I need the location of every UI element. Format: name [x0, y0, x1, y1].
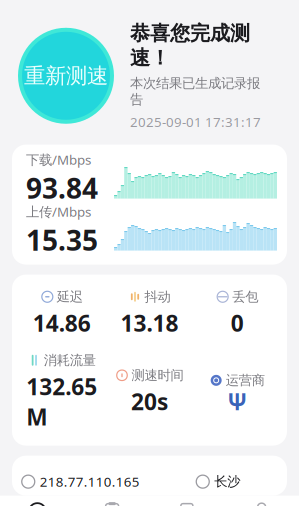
staticText: 测速时间 [131, 367, 183, 383]
staticText: 20s [131, 386, 168, 417]
staticText: 13.18 [120, 308, 178, 338]
staticText: 运营商 [226, 372, 265, 389]
staticText: 132.65M [26, 371, 97, 432]
staticText: 丢包 [232, 289, 258, 305]
staticText: 15.35 [26, 221, 98, 258]
staticText: 93.84 [26, 169, 98, 206]
button[interactable]: 首页 [0, 496, 75, 506]
staticText: Ψ [227, 386, 247, 417]
staticText: 2025-09-01 17:31:17 [130, 113, 261, 131]
staticText: 重新测速 [24, 63, 108, 89]
staticText: 本次结果已生成记录报告 [130, 75, 260, 108]
button[interactable]: 记录 [75, 496, 150, 506]
staticText: 14.86 [33, 308, 91, 338]
staticText: 上传/Mbps [26, 203, 91, 220]
button[interactable]: 重新测速 [16, 26, 116, 126]
button[interactable]: 排行 [149, 496, 224, 506]
staticText: 下载/Mbps [26, 151, 91, 168]
staticText: 抖动 [144, 289, 170, 305]
button[interactable]: 我的 [224, 496, 299, 506]
staticText: 0 [231, 308, 244, 338]
staticText: 218.77.110.165 [40, 473, 140, 490]
staticText: 长沙 [214, 473, 240, 490]
staticText: 消耗流量 [44, 352, 96, 368]
staticText: 延迟 [57, 289, 83, 305]
staticText: 恭喜您完成测速！ [130, 21, 250, 70]
